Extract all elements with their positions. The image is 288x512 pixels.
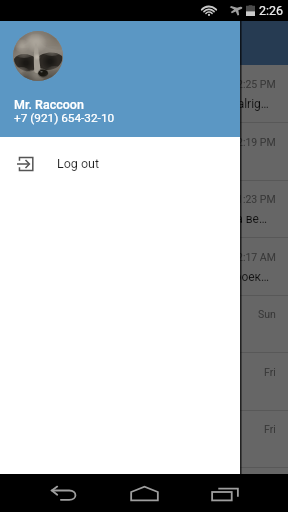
button[interactable]: Anna Petrova (0, 123, 288, 181)
button[interactable]: Мама (0, 180, 288, 238)
button[interactable]: Olga (0, 295, 288, 353)
staticText: Fri (264, 366, 276, 378)
button[interactable]: Pavel (0, 410, 288, 468)
button[interactable]: Home (114, 474, 174, 512)
button[interactable]: Дмитрий (0, 238, 288, 296)
button[interactable]: Recent apps (195, 474, 255, 512)
staticText: Hello there, I hope you are doing alrigh… (64, 97, 272, 111)
button[interactable]: Sergey Ivanov (0, 65, 288, 123)
staticText: Fri (264, 423, 276, 435)
button[interactable]: Back (34, 474, 94, 512)
staticText: 1:23 PM (237, 193, 276, 205)
staticText: Anna Petrova (64, 135, 139, 150)
staticText: Sun (258, 308, 276, 320)
staticText: Mr. Raccoon (14, 97, 84, 112)
staticText: 2:19 PM (237, 136, 276, 148)
button[interactable]: Log out (0, 137, 240, 185)
staticText: Завтра надо сдать все наши проекты и док… (64, 270, 272, 284)
staticText: Привет! Я буду дома как всегда вечером (64, 212, 272, 226)
staticText: 2:17 AM (237, 251, 276, 263)
staticText: 2:26 (259, 3, 284, 18)
button[interactable]: Ivan (0, 353, 288, 411)
staticText: Log out (57, 156, 100, 171)
staticText: +7 (921) 654-32-10 (14, 111, 115, 125)
staticText: 2:25 PM (237, 78, 276, 90)
